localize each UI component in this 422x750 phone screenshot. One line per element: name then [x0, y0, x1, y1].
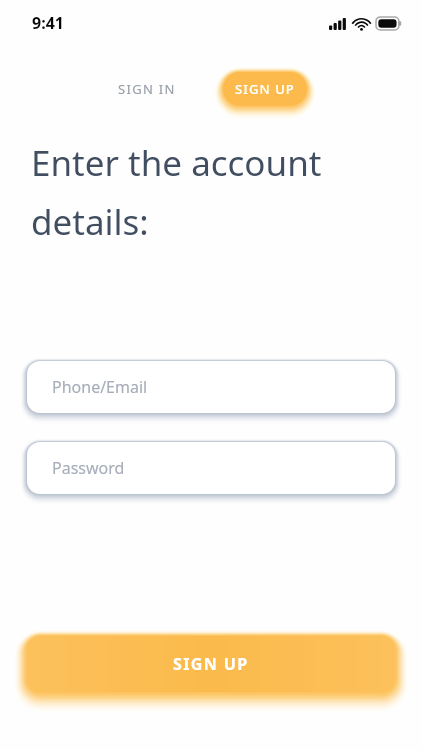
button[interactable]: SIGN UP: [223, 72, 307, 106]
staticText: 9:41: [32, 12, 64, 34]
staticText: SIGN UP: [173, 653, 249, 675]
staticText: Phone/Email: [52, 376, 148, 398]
button[interactable]: Password: [27, 442, 395, 494]
staticText: SIGN IN: [118, 80, 176, 98]
staticText: SIGN UP: [235, 80, 295, 98]
staticText: Enter the account details:: [31, 139, 398, 245]
staticText: Password: [52, 457, 125, 479]
button[interactable]: Phone/Email: [27, 361, 395, 413]
button[interactable]: SIGN UP: [27, 636, 395, 692]
button[interactable]: SIGN IN: [112, 71, 182, 107]
